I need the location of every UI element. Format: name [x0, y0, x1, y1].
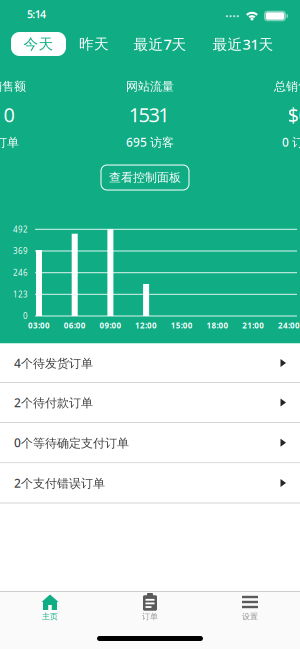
button[interactable]: 最近31天: [212, 34, 273, 54]
staticText: 总销售额: [274, 79, 300, 94]
staticText: 最近31天: [212, 34, 273, 54]
button[interactable]: 查看控制面板: [101, 165, 189, 190]
button[interactable]: 最近7天: [133, 34, 186, 54]
staticText: 0 订单: [0, 134, 19, 150]
staticText: 24:00: [278, 320, 300, 331]
staticText: 4个待发货订单: [14, 355, 93, 371]
button[interactable]: 设置: [200, 585, 300, 641]
button[interactable]: 0个等待确定支付订单: [0, 423, 300, 462]
staticText: 09:00: [99, 320, 121, 331]
staticText: 销售额: [0, 79, 26, 94]
staticText: 03:00: [28, 320, 50, 331]
staticText: $0: [287, 101, 300, 128]
staticText: 0: [3, 101, 14, 128]
staticText: 12:00: [135, 320, 157, 331]
staticText: 设置: [242, 612, 258, 621]
staticText: 1531: [129, 101, 169, 128]
staticText: 5:14: [27, 7, 46, 21]
staticText: 06:00: [64, 320, 86, 331]
staticText: 今天: [23, 35, 53, 53]
staticText: 2个待付款订单: [14, 394, 93, 410]
staticText: 网站流量: [126, 79, 174, 94]
staticText: 昨天: [79, 35, 109, 53]
staticText: 查看控制面板: [109, 170, 181, 185]
staticText: 0个等待确定支付订单: [14, 435, 129, 451]
staticText: 15:00: [171, 320, 193, 331]
staticText: 369: [13, 246, 28, 256]
staticText: 21:00: [242, 320, 264, 331]
button[interactable]: 昨天: [79, 35, 109, 53]
staticText: 695 访客: [126, 134, 174, 150]
staticText: 0: [23, 311, 28, 321]
staticText: 0 订单: [282, 134, 300, 150]
staticText: 主页: [42, 612, 58, 621]
staticText: 492: [13, 224, 28, 235]
button[interactable]: 今天: [11, 32, 66, 56]
button[interactable]: 主页: [0, 585, 100, 641]
button[interactable]: 4个待发货订单: [0, 343, 300, 382]
staticText: 2个支付错误订单: [14, 475, 105, 491]
staticText: 最近7天: [133, 34, 186, 54]
button[interactable]: 2个待付款订单: [0, 383, 300, 422]
staticText: 订单: [142, 612, 158, 621]
staticText: 246: [13, 267, 28, 278]
button[interactable]: 2个支付错误订单: [0, 463, 300, 502]
button[interactable]: 订单: [100, 585, 200, 641]
staticText: 123: [13, 289, 28, 300]
staticText: 18:00: [206, 320, 228, 331]
